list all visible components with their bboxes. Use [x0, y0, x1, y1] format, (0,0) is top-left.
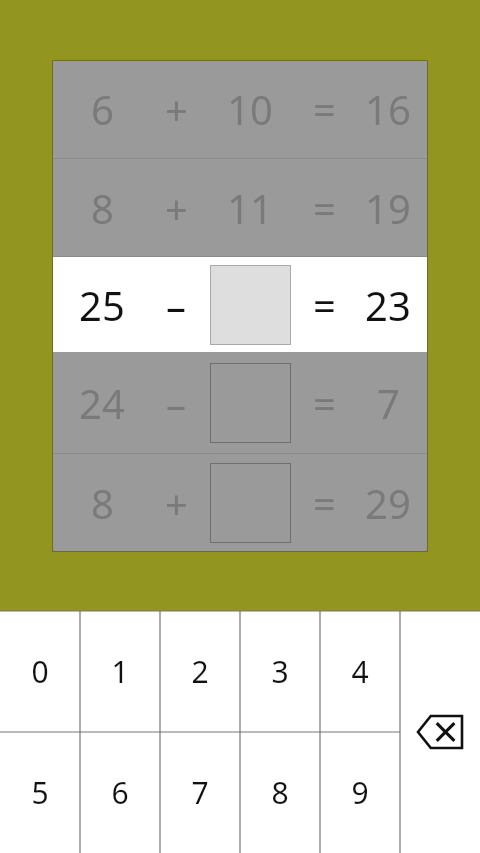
staticText: 4: [351, 651, 369, 692]
staticText: =: [313, 476, 336, 530]
staticText: –: [166, 278, 186, 332]
staticText: 6: [111, 772, 129, 813]
staticText: 16: [365, 82, 411, 136]
button[interactable]: 4: [320, 611, 400, 732]
staticText: =: [313, 278, 336, 332]
button[interactable]: 2: [160, 611, 240, 732]
button[interactable]: 5: [0, 732, 80, 853]
staticText: 3: [271, 651, 289, 692]
button[interactable]: 24: [52, 352, 428, 453]
staticText: 8: [271, 772, 289, 813]
staticText: –: [166, 376, 186, 430]
staticText: 2: [191, 651, 209, 692]
staticText: 0: [31, 651, 49, 692]
staticText: +: [165, 476, 188, 530]
button[interactable]: 1: [80, 611, 160, 732]
staticText: 8: [91, 476, 114, 530]
button[interactable]: 6: [52, 60, 428, 158]
staticText: 7: [191, 772, 209, 813]
staticText: 19: [365, 181, 411, 235]
staticText: 1: [111, 651, 129, 692]
staticText: 5: [31, 772, 49, 813]
staticText: +: [165, 82, 188, 136]
staticText: =: [313, 82, 336, 136]
staticText: 25: [79, 278, 125, 332]
staticText: 29: [365, 476, 411, 530]
staticText: 6: [91, 82, 114, 136]
staticText: =: [313, 376, 336, 430]
button[interactable]: 6: [80, 732, 160, 853]
staticText: 10: [227, 82, 273, 136]
staticText: 23: [365, 278, 411, 332]
button[interactable]: 3: [240, 611, 320, 732]
staticText: 9: [351, 772, 369, 813]
button[interactable]: 9: [320, 732, 400, 853]
button[interactable]: 25: [52, 257, 428, 352]
button[interactable]: 8: [52, 159, 428, 256]
staticText: 24: [79, 376, 125, 430]
button[interactable]: Backspace: [400, 611, 480, 853]
button[interactable]: 7: [160, 732, 240, 853]
button[interactable]: 8: [240, 732, 320, 853]
staticText: +: [165, 181, 188, 235]
staticText: 8: [91, 181, 114, 235]
staticText: 11: [227, 181, 273, 235]
staticText: =: [313, 181, 336, 235]
staticText: 7: [377, 376, 400, 430]
button[interactable]: 8: [52, 454, 428, 552]
button[interactable]: 0: [0, 611, 80, 732]
